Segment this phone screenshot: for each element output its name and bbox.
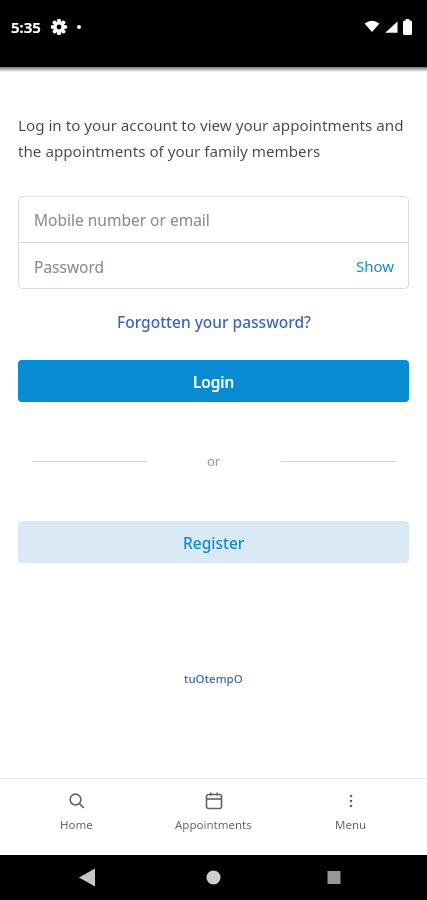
staticText: or [207,452,221,470]
button[interactable]: Mobile number or email [18,196,409,242]
staticText: Home [60,817,93,833]
button[interactable]: Menu [282,779,419,855]
staticText: Register [183,532,245,553]
button[interactable]: Forgotten your password? [117,311,311,332]
button[interactable]: Login [18,360,409,402]
button[interactable]: Show [356,256,395,276]
button[interactable]: tuOtempO [184,671,243,687]
staticText: Mobile number or email [34,209,210,230]
staticText: 5:35 [11,17,41,37]
button[interactable] [0,855,427,900]
staticText: Appointments [175,817,252,833]
staticText: Menu [335,817,367,833]
button[interactable]: Home [8,779,145,855]
staticText: Password [34,256,356,277]
staticText: Login [193,371,235,392]
button[interactable]: Register [18,521,409,563]
button[interactable]: Appointments [145,779,282,855]
button[interactable]: Password [18,243,409,289]
staticText: Log in to your account to view your appo… [18,115,404,162]
